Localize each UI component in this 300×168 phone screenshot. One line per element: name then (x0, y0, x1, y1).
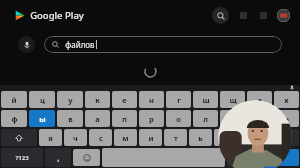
button[interactable]: ?123 (1, 148, 43, 167)
staticText: р (149, 114, 154, 124)
button[interactable]: Voice input (289, 85, 295, 90)
button[interactable]: , (45, 148, 71, 167)
staticText: н (149, 95, 154, 105)
button[interactable]: с (89, 129, 112, 146)
staticText: к (95, 95, 100, 105)
staticText: ф (11, 114, 18, 124)
button[interactable]: д (220, 110, 245, 127)
staticText: ш (202, 95, 210, 105)
staticText: в (68, 114, 73, 124)
button[interactable]: х (274, 91, 299, 108)
button[interactable]: я (39, 129, 62, 146)
button[interactable]: ш (193, 91, 218, 108)
staticText: ю (247, 133, 254, 143)
button[interactable]: а (85, 110, 110, 127)
staticText: ы (39, 114, 46, 124)
button[interactable]: к (85, 91, 110, 108)
staticText: ?123 (15, 154, 29, 162)
button[interactable]: э (274, 110, 299, 127)
staticText: , (57, 152, 60, 163)
staticText: Google Play (30, 9, 84, 22)
staticText: щ (229, 95, 237, 105)
button[interactable]: Google Play (14, 10, 25, 21)
button[interactable]: ж (247, 110, 272, 127)
button[interactable]: Shift (1, 129, 37, 146)
button[interactable]: Emoji (73, 149, 100, 166)
staticText: з (258, 95, 262, 105)
button[interactable]: й (1, 91, 27, 108)
button[interactable]: ц (29, 91, 55, 108)
button[interactable]: щ (220, 91, 245, 108)
staticText: г (177, 95, 181, 105)
button[interactable]: ч (64, 129, 87, 146)
button[interactable]: Search (212, 7, 229, 24)
staticText: с (99, 133, 103, 143)
staticText: о (176, 114, 181, 124)
button[interactable]: ь (189, 129, 212, 146)
button[interactable]: Presenter camera (218, 100, 292, 168)
staticText: ч (73, 133, 78, 143)
button[interactable]: Account (277, 9, 290, 22)
staticText: я (48, 133, 53, 143)
button[interactable]: о (166, 110, 191, 127)
staticText: у (68, 95, 73, 105)
button[interactable]: Space (102, 148, 225, 167)
button[interactable]: Search (256, 149, 299, 166)
button[interactable]: . (227, 148, 254, 167)
button[interactable]: и (139, 129, 162, 146)
button[interactable]: б (214, 129, 237, 146)
staticText: и (148, 133, 154, 143)
staticText: а (95, 114, 100, 124)
button[interactable]: л (193, 110, 218, 127)
button[interactable]: п (112, 110, 137, 127)
staticText: э (285, 114, 289, 124)
staticText: х (284, 95, 289, 105)
button[interactable]: Voice search (18, 36, 35, 53)
button[interactable]: ю (239, 129, 262, 146)
staticText: п (122, 114, 127, 124)
staticText: файлов (65, 39, 95, 50)
button[interactable]: Apps (237, 9, 249, 21)
staticText: м (122, 133, 129, 143)
button[interactable]: Library (257, 9, 269, 21)
staticText: ж (256, 114, 263, 124)
button[interactable]: ы (29, 110, 55, 127)
staticText: ц (40, 95, 45, 105)
button[interactable]: е (112, 91, 137, 108)
button[interactable]: н (139, 91, 164, 108)
staticText: ь (198, 133, 203, 143)
staticText: е (122, 95, 127, 105)
button[interactable]: г (166, 91, 191, 108)
button[interactable]: в (57, 110, 83, 127)
button[interactable]: м (114, 129, 137, 146)
button[interactable]: ф (1, 110, 27, 127)
staticText: . (239, 152, 242, 163)
button[interactable]: Backspace (264, 129, 299, 146)
staticText: й (11, 95, 17, 105)
button[interactable]: з (247, 91, 272, 108)
button[interactable]: р (139, 110, 164, 127)
staticText: л (203, 114, 208, 124)
button[interactable]: у (57, 91, 83, 108)
button[interactable]: файлов (44, 36, 282, 53)
staticText: т (174, 133, 178, 143)
button[interactable]: т (164, 129, 187, 146)
